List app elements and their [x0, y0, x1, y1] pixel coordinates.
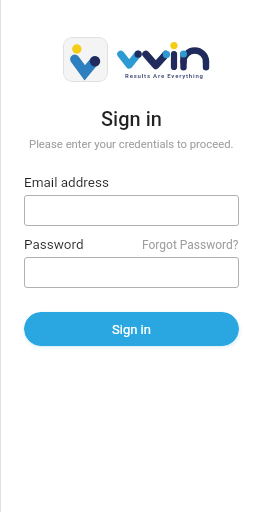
- staticText: Results Are Everything: [125, 72, 204, 79]
- staticText: Sign in: [112, 322, 151, 337]
- staticText: Please enter your credentials to proceed…: [29, 138, 234, 151]
- button[interactable]: [24, 257, 239, 288]
- staticText: Password: [24, 236, 84, 252]
- button[interactable]: Forgot Password?: [142, 238, 239, 252]
- staticText: Sign in: [101, 107, 162, 130]
- button[interactable]: Sign in: [24, 312, 239, 346]
- button[interactable]: [24, 195, 239, 226]
- staticText: Forgot Password?: [142, 238, 239, 252]
- staticText: Email address: [24, 174, 109, 190]
